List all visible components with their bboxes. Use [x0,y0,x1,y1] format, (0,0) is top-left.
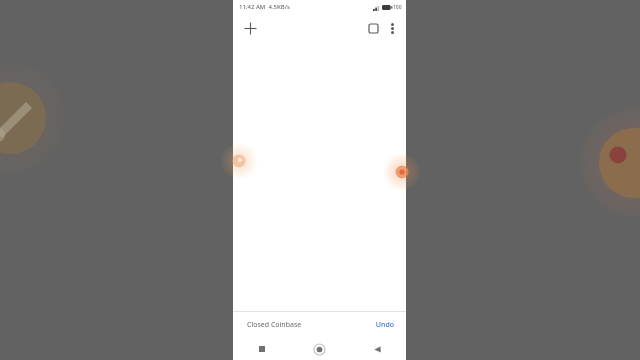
staticText: Closed Coinbase [247,320,302,330]
button[interactable]: 11:42 AM 4.5KB/s [233,0,406,360]
staticText: Undo [375,320,394,330]
staticText: 100 [393,4,402,11]
button[interactable]: New tab [240,18,260,38]
button[interactable]: Undo [371,317,398,333]
button[interactable]: More options [383,19,401,37]
button[interactable]: Switch tabs [363,18,383,38]
button[interactable]: Recent apps [233,338,290,360]
staticText: 11:42 AM 4.5KB/s [239,3,290,11]
button[interactable]: Back [348,338,406,360]
button[interactable]: Home [290,338,348,360]
